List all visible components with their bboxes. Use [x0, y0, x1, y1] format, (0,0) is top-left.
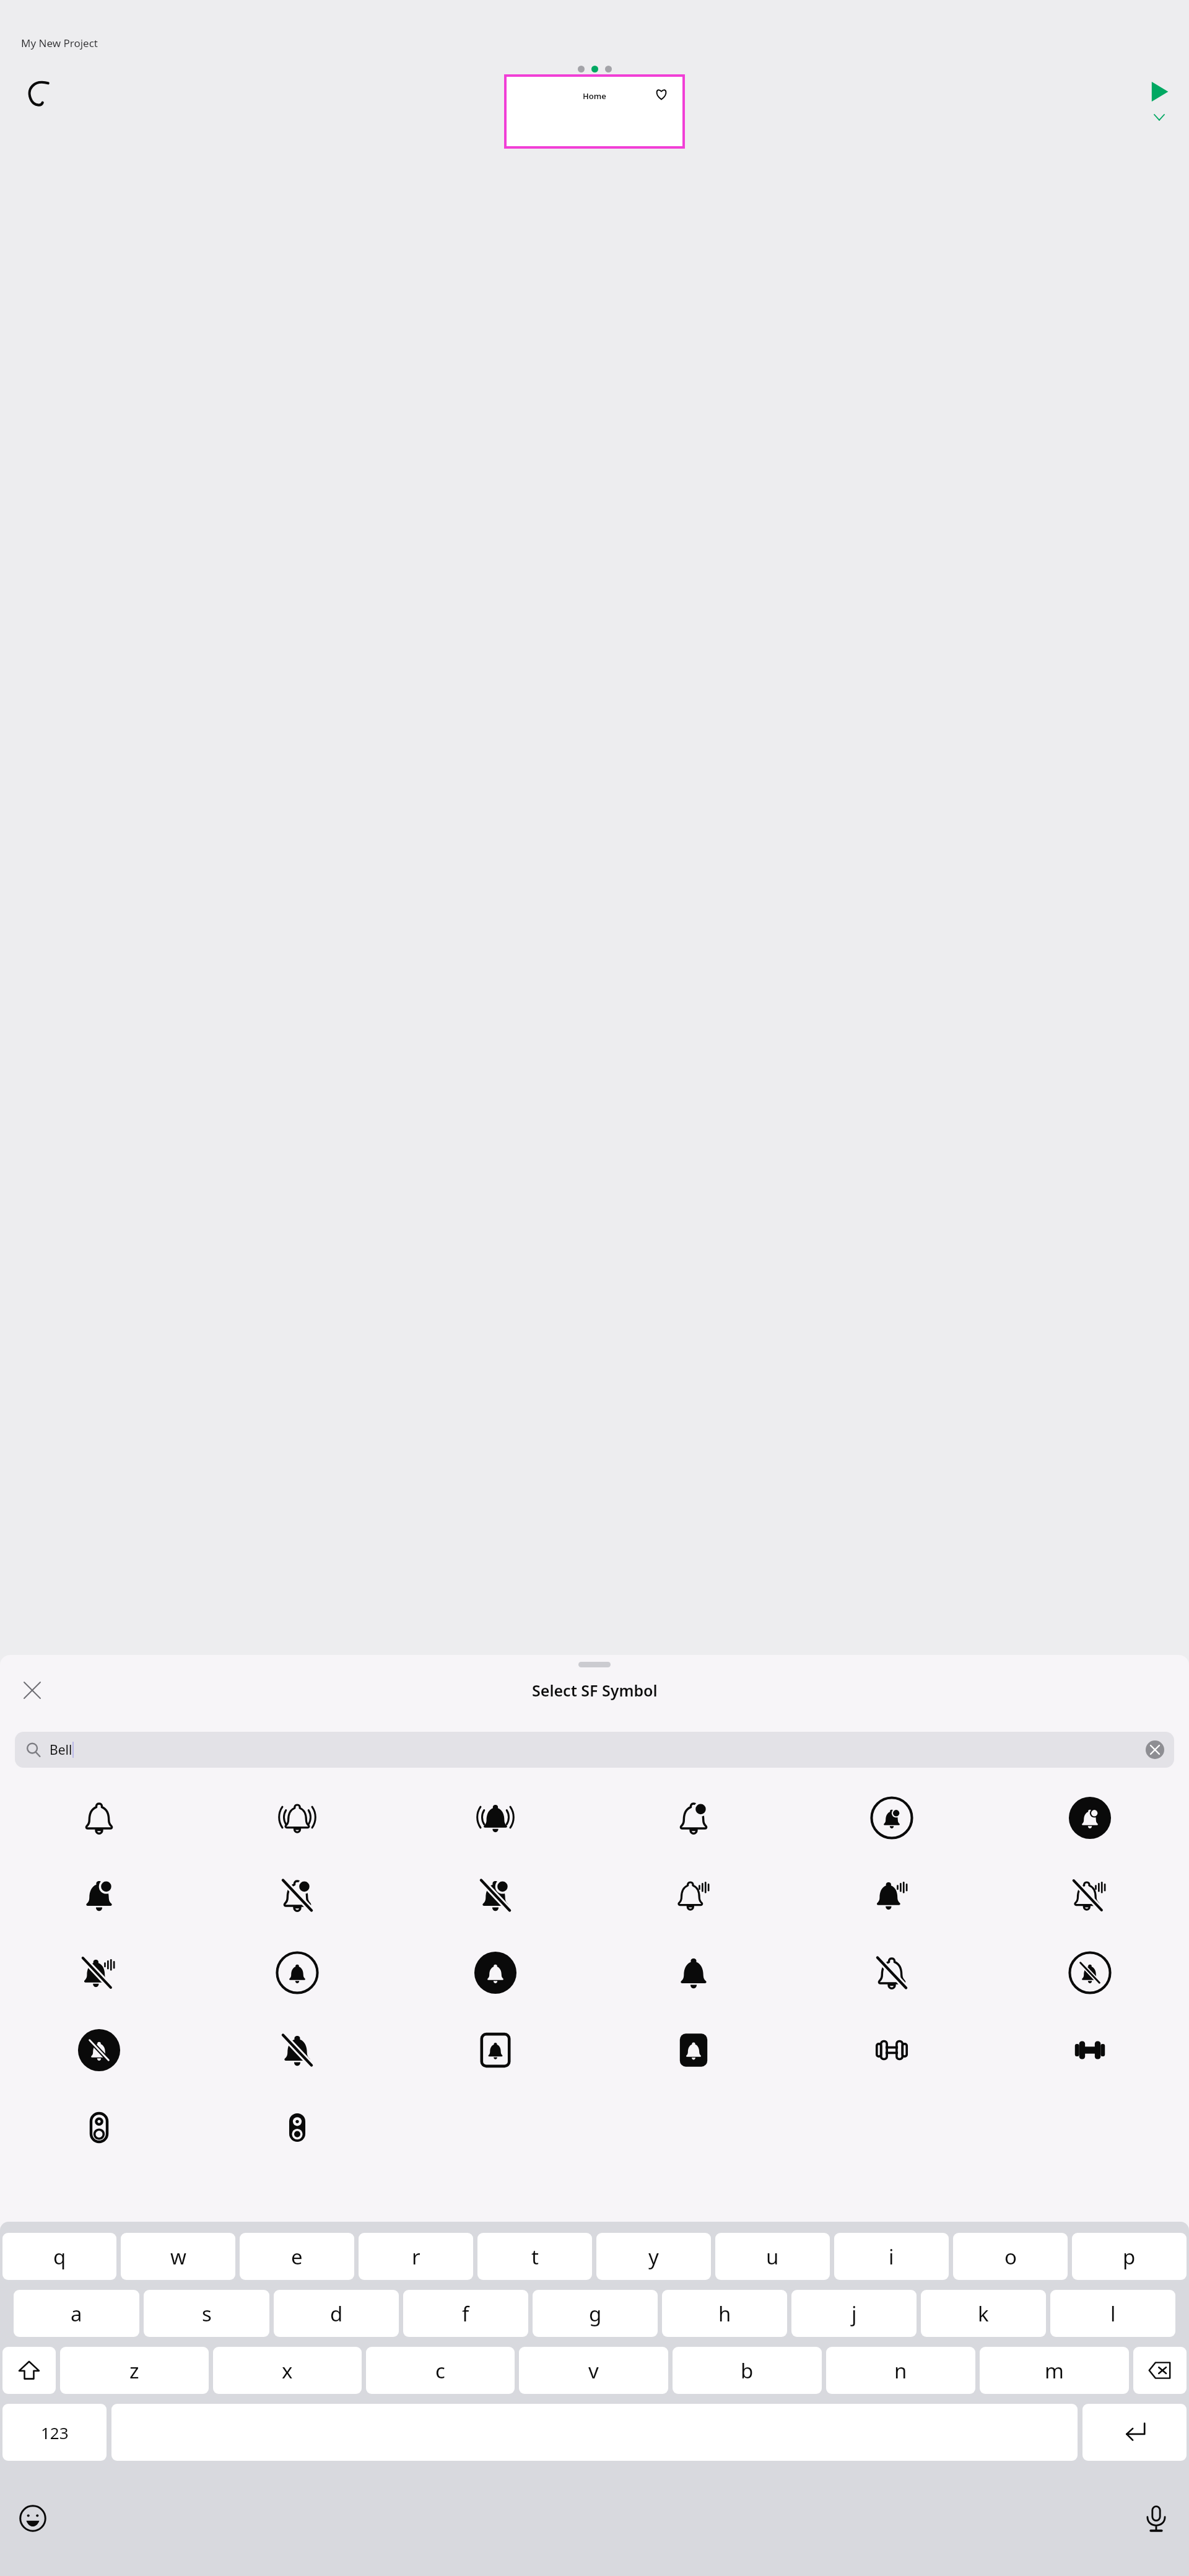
staticText: g [589, 2300, 602, 2328]
staticText: m [1045, 2357, 1064, 2385]
staticText: o [1004, 2243, 1017, 2271]
staticText: r [412, 2243, 420, 2271]
staticText: y [648, 2243, 659, 2271]
button[interactable]: z [60, 2347, 209, 2394]
button[interactable]: Symbol 1 [0, 1779, 198, 1856]
button[interactable]: j [791, 2290, 917, 2337]
staticText: My New Project [21, 36, 98, 50]
staticText: w [170, 2243, 186, 2271]
button[interactable]: d [274, 2290, 399, 2337]
button[interactable]: v [519, 2347, 668, 2394]
staticText: u [766, 2243, 779, 2271]
staticText: v [588, 2357, 599, 2385]
button[interactable]: Play [1146, 78, 1173, 105]
button[interactable]: Bell [15, 1732, 1174, 1768]
staticText: i [889, 2243, 894, 2271]
button[interactable]: Backspace [1133, 2347, 1187, 2394]
button[interactable]: Symbol 16 [594, 1934, 793, 2011]
button[interactable]: q [2, 2233, 116, 2280]
button[interactable]: Symbol 18 [991, 1934, 1189, 2011]
button[interactable]: Symbol 22 [594, 2011, 793, 2089]
staticText: j [851, 2300, 857, 2328]
button[interactable]: Symbol 6 [991, 1779, 1189, 1856]
button[interactable]: Favourite [649, 82, 674, 107]
staticText: Home [583, 90, 606, 102]
button[interactable]: Symbol 14 [198, 1934, 396, 2011]
button[interactable]: Symbol 8 [198, 1856, 396, 1934]
button[interactable]: u [715, 2233, 830, 2280]
staticText: l [1110, 2300, 1116, 2328]
button[interactable]: n [826, 2347, 975, 2394]
button[interactable]: a [14, 2290, 139, 2337]
button[interactable]: g [533, 2290, 658, 2337]
button[interactable]: Dictate [1137, 2499, 1175, 2538]
staticText: n [894, 2357, 907, 2385]
staticText: c [435, 2357, 445, 2385]
staticText: b [741, 2357, 754, 2385]
button[interactable]: s [144, 2290, 269, 2337]
button[interactable]: o [953, 2233, 1068, 2280]
button[interactable]: Undo [21, 76, 56, 110]
button[interactable]: Symbol 23 [793, 2011, 991, 2089]
button[interactable]: Symbol 13 [0, 1934, 198, 2011]
button[interactable]: Clear [1146, 1740, 1164, 1759]
button[interactable]: Symbol 15 [396, 1934, 594, 2011]
staticText: e [291, 2243, 303, 2271]
button[interactable]: 123 [2, 2404, 107, 2461]
staticText: k [978, 2300, 989, 2328]
button[interactable]: p [1072, 2233, 1187, 2280]
button[interactable]: Symbol 20 [198, 2011, 396, 2089]
staticText: d [330, 2300, 343, 2328]
button[interactable]: w [121, 2233, 235, 2280]
button[interactable]: x [213, 2347, 362, 2394]
button[interactable]: Symbol 2 [198, 1779, 396, 1856]
staticText: h [718, 2300, 731, 2328]
button[interactable]: b [673, 2347, 822, 2394]
button[interactable]: Symbol 25 [0, 2089, 198, 2166]
staticText: x [282, 2357, 293, 2385]
staticText: f [462, 2300, 469, 2328]
button[interactable]: Symbol 10 [594, 1856, 793, 1934]
button[interactable]: k [921, 2290, 1046, 2337]
button[interactable]: Symbol 12 [991, 1856, 1189, 1934]
button[interactable]: Collapse [1150, 108, 1169, 126]
button[interactable]: Symbol 7 [0, 1856, 198, 1934]
button[interactable]: Symbol 5 [793, 1779, 991, 1856]
button[interactable]: r [359, 2233, 473, 2280]
staticText: s [202, 2300, 212, 2328]
button[interactable]: Symbol 4 [594, 1779, 793, 1856]
button[interactable]: e [240, 2233, 354, 2280]
button[interactable]: Shift [2, 2347, 56, 2394]
button[interactable]: t [477, 2233, 592, 2280]
button[interactable]: i [834, 2233, 949, 2280]
button[interactable]: Symbol 3 [396, 1779, 594, 1856]
button[interactable]: m [980, 2347, 1129, 2394]
button[interactable]: Symbol 24 [991, 2011, 1189, 2089]
staticText: a [71, 2300, 82, 2328]
button[interactable]: f [403, 2290, 528, 2337]
button[interactable]: y [596, 2233, 711, 2280]
button[interactable]: l [1050, 2290, 1175, 2337]
staticText: Bell [50, 1741, 72, 1759]
staticText: q [53, 2243, 66, 2271]
button[interactable]: Close [17, 1675, 47, 1705]
staticText: p [1123, 2243, 1136, 2271]
staticText: t [531, 2243, 539, 2271]
staticText: z [129, 2357, 139, 2385]
staticText: Select SF Symbol [532, 1680, 658, 1701]
button[interactable]: Symbol 19 [0, 2011, 198, 2089]
button[interactable]: Symbol 26 [198, 2089, 396, 2166]
button[interactable]: Return [1082, 2404, 1187, 2461]
button[interactable]: Symbol 17 [793, 1934, 991, 2011]
button[interactable]: h [662, 2290, 787, 2337]
button[interactable]: c [366, 2347, 515, 2394]
button[interactable]: Symbol 11 [793, 1856, 991, 1934]
button[interactable]: Symbol 21 [396, 2011, 594, 2089]
button[interactable]: Emoji [14, 2499, 52, 2538]
button[interactable]: Symbol 9 [396, 1856, 594, 1934]
staticText: 123 [41, 2422, 69, 2443]
